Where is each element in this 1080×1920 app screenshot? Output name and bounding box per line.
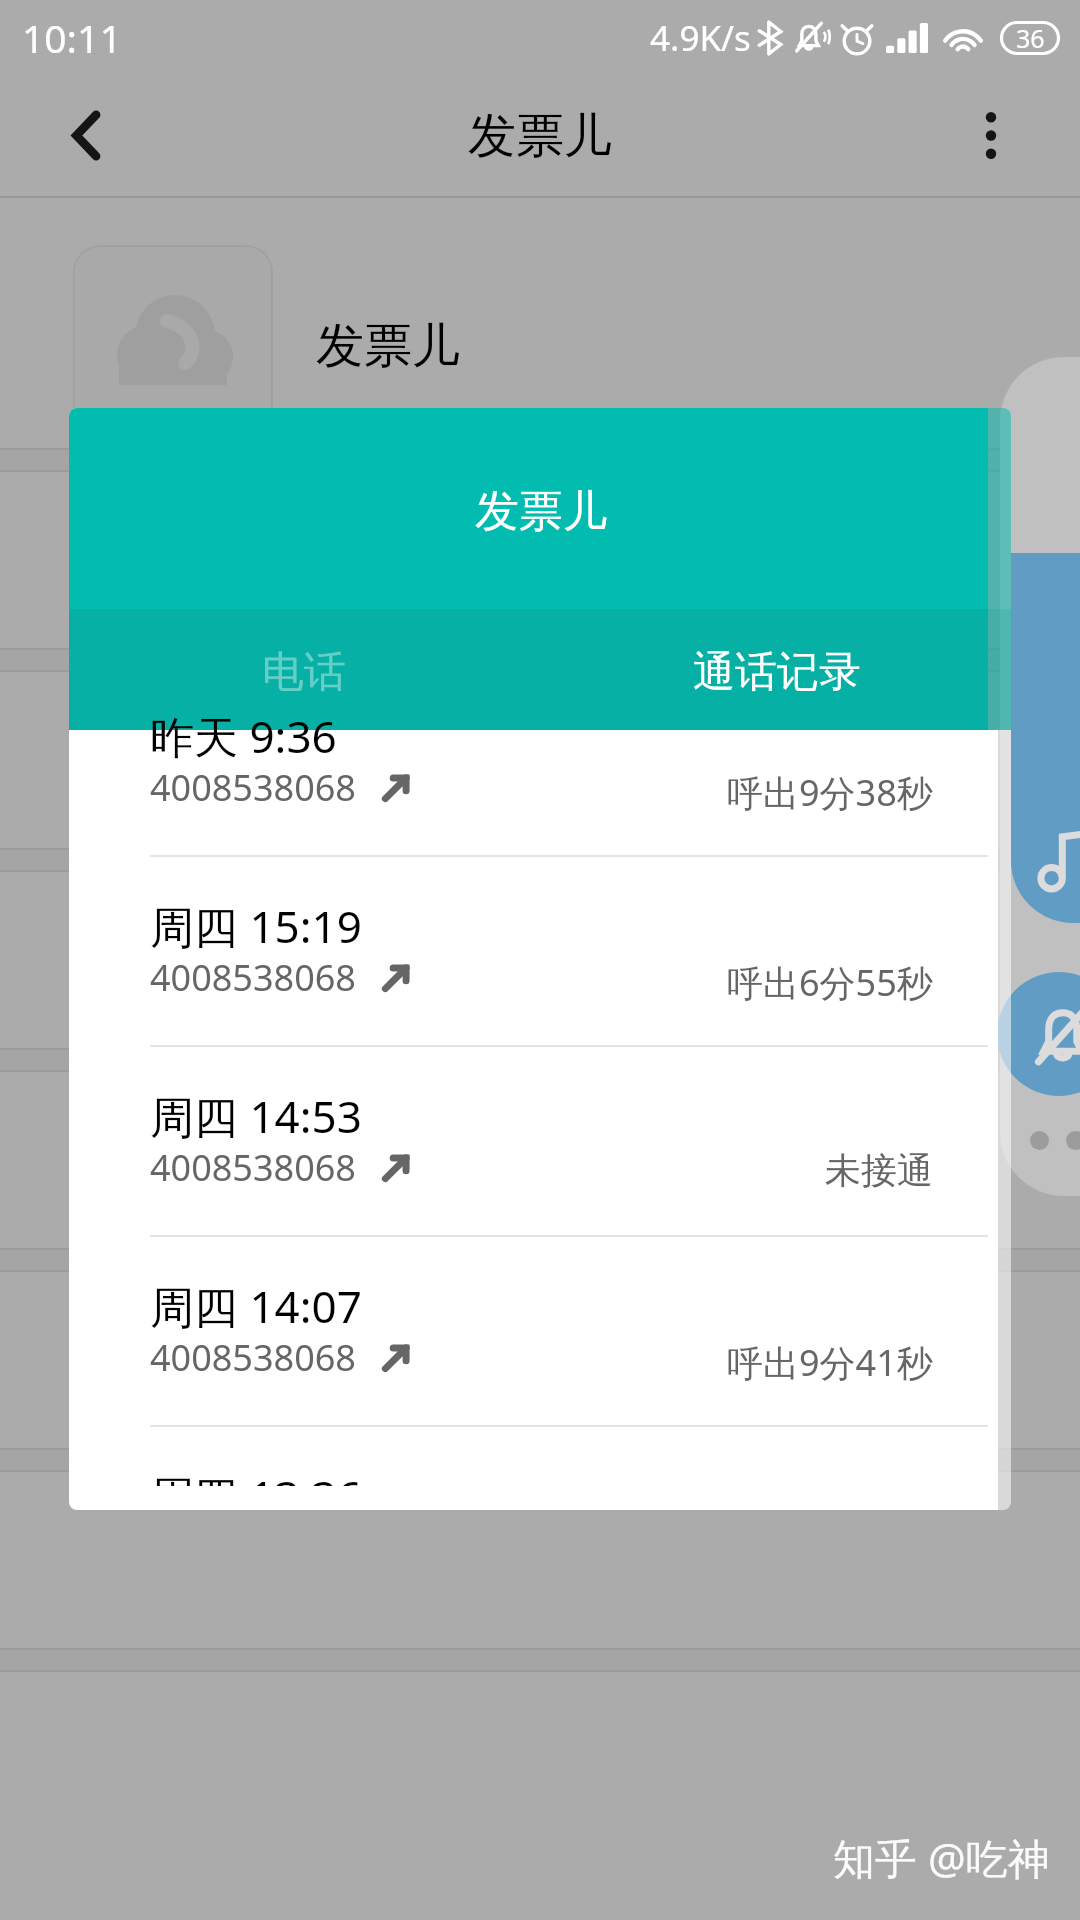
button[interactable]: More <box>1030 1131 1080 1150</box>
staticText: 4.9K/s <box>650 14 751 62</box>
staticText: 呼出6分55秒 <box>727 958 933 1007</box>
staticText: 发票儿 <box>316 316 460 376</box>
staticText: 4008538068 <box>150 953 356 1002</box>
button[interactable]: 周四 14:53 <box>69 1047 988 1235</box>
button[interactable]: Now playing <box>1011 553 1080 923</box>
staticText: 呼出9分38秒 <box>727 768 933 817</box>
staticText: 电话 <box>262 646 346 699</box>
staticText: 知乎 @吃神 <box>833 1829 1050 1886</box>
button[interactable]: More options <box>902 75 1080 196</box>
staticText: 4008538068 <box>150 1143 356 1192</box>
staticText: 周四 13:36 <box>150 1466 362 1486</box>
button[interactable]: Mute notifications <box>997 972 1080 1096</box>
staticText: 10:11 <box>22 11 122 64</box>
staticText: 发票儿 <box>468 106 612 166</box>
staticText: 周四 14:53 <box>150 1086 362 1146</box>
staticText: 通话记录 <box>693 646 861 699</box>
staticText: 昨天 9:36 <box>150 706 337 766</box>
staticText: 36 <box>1016 21 1045 55</box>
button[interactable]: 周四 15:19 <box>69 857 988 1045</box>
staticText: 周四 15:19 <box>150 896 362 956</box>
staticText: 4008538068 <box>150 763 356 812</box>
button[interactable]: 电话 <box>144 612 464 733</box>
button[interactable]: Contact photo <box>73 245 273 445</box>
staticText: 周四 14:07 <box>150 1276 362 1336</box>
button[interactable]: 周四 14:07 <box>69 1237 988 1425</box>
staticText: 呼出9分41秒 <box>727 1338 933 1387</box>
button[interactable]: Back <box>0 75 172 196</box>
button[interactable]: 昨天 9:36 <box>69 667 988 855</box>
staticText: 4008538068 <box>150 1333 356 1382</box>
button[interactable]: 通话记录 <box>617 612 937 733</box>
staticText: 发票儿 <box>475 484 607 539</box>
staticText: 未接通 <box>825 1148 933 1193</box>
